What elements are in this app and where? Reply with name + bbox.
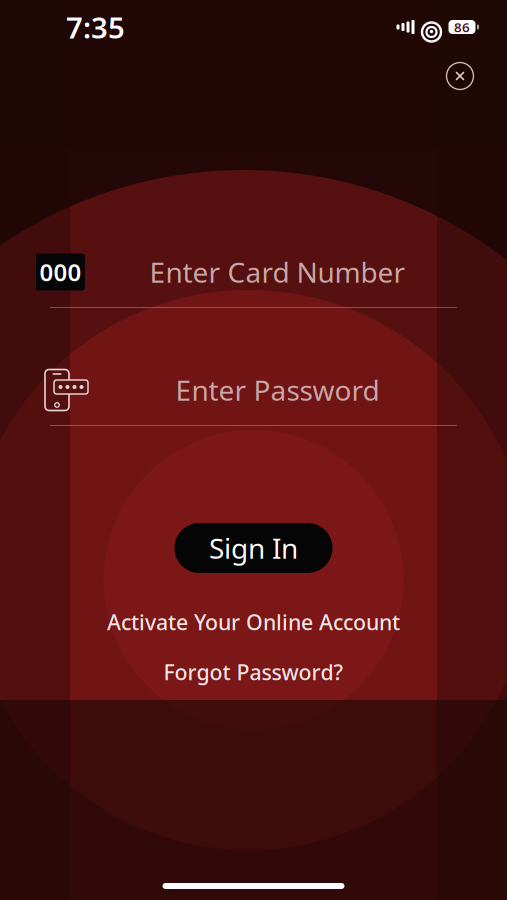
- button[interactable]: Activate Your Online Account: [107, 610, 400, 634]
- button[interactable]: Sign In: [174, 523, 332, 573]
- button[interactable]: Close: [438, 54, 482, 98]
- staticText: Enter Password: [175, 371, 379, 409]
- staticText: 000: [39, 256, 81, 288]
- staticText: 86: [454, 18, 470, 36]
- button[interactable]: Forgot Password?: [163, 660, 343, 684]
- staticText: Sign In: [209, 529, 298, 567]
- staticText: Enter Card Number: [149, 253, 405, 291]
- staticText: Activate Your Online Account: [107, 608, 400, 636]
- staticText: Forgot Password?: [163, 658, 343, 686]
- staticText: 7:35: [66, 7, 125, 46]
